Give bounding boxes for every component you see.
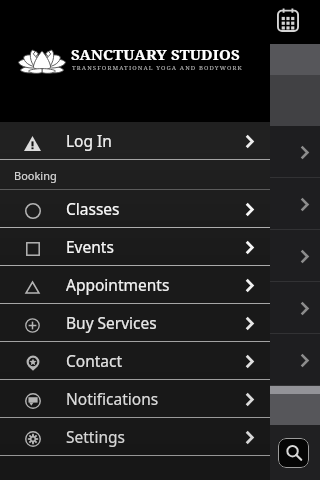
button[interactable]: Search [278, 438, 309, 468]
staticText: Classes [66, 198, 120, 219]
button[interactable]: Settings [0, 418, 270, 456]
button[interactable]: Log In [0, 122, 270, 160]
button[interactable]: Contact [0, 342, 270, 380]
staticText: Contact [66, 350, 123, 371]
staticText: Appointments [66, 274, 170, 295]
staticText: Notifications [66, 388, 159, 409]
button[interactable]: Calendar [274, 6, 302, 34]
staticText: TRANSFORMATIONAL YOGA AND BODYWORK [72, 64, 243, 72]
button[interactable] [0, 126, 320, 178]
staticText: Events [66, 236, 114, 257]
staticText: Log In [66, 130, 112, 151]
button[interactable]: Buy Services [0, 304, 270, 342]
staticText: SANCTUARY STUDIOS [71, 44, 240, 64]
staticText: Buy Services [66, 312, 157, 333]
button[interactable] [0, 334, 320, 386]
button[interactable]: Notifications [0, 380, 270, 418]
button[interactable] [0, 230, 320, 282]
button[interactable]: Events [0, 228, 270, 266]
button[interactable] [0, 282, 320, 334]
button[interactable] [0, 178, 320, 230]
button[interactable]: Appointments [0, 266, 270, 304]
staticText: Booking [14, 168, 57, 183]
staticText: Settings [66, 426, 125, 447]
button[interactable]: Classes [0, 190, 270, 228]
